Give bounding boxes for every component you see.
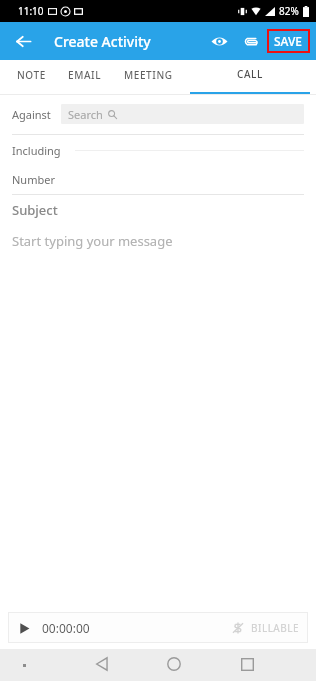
staticText: NOTE [17,68,46,82]
button[interactable]: Against [12,104,304,124]
staticText: Number [12,172,55,187]
staticText: 00:00:00 [42,620,90,636]
button[interactable]: Start timer [18,620,90,636]
button[interactable]: Back [8,26,38,56]
staticText: BILLABLE [251,621,300,635]
button[interactable]: Number [12,165,304,194]
button[interactable]: Subject [12,195,304,225]
staticText: EMAIL [68,68,102,82]
button[interactable]: CALL [184,60,316,94]
button[interactable]: Home [159,649,189,679]
staticText: 82% [279,4,299,18]
button[interactable]: NOTE [6,60,57,94]
button[interactable]: Recents [232,649,262,679]
button[interactable]: EMAIL [57,60,113,94]
staticText: Subject [12,201,58,219]
staticText: Including [12,143,61,158]
button[interactable]: Back [87,649,117,679]
button[interactable]: Preview [205,27,233,55]
button[interactable]: Attach [237,27,265,55]
staticText: Create Activity [54,32,151,51]
staticText: 11:10 [18,4,44,18]
staticText: CALL [237,67,263,81]
button[interactable]: MEETING [113,60,184,94]
staticText: MEETING [124,68,173,82]
staticText: Against [12,107,51,122]
button[interactable]: Including [12,135,304,165]
staticText: Search [68,107,103,122]
button[interactable]: More [15,656,33,674]
button[interactable]: BILLABLE [232,621,300,635]
staticText: SAVE [274,33,303,49]
staticText: Start typing your message [12,232,173,250]
button[interactable]: Start typing your message [12,225,304,257]
button[interactable]: SAVE [274,33,303,49]
